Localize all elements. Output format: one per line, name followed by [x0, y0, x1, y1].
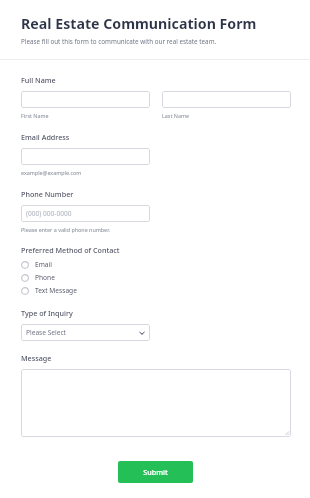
staticText: Please enter a valid phone number.: [21, 226, 110, 233]
staticText: Please Select: [26, 328, 139, 337]
staticText: Email Address: [21, 132, 70, 142]
button[interactable]: Phone: [21, 271, 141, 284]
staticText: Type of Inquiry: [21, 308, 73, 318]
button[interactable]: Text Message: [21, 284, 141, 297]
button[interactable]: Email: [21, 258, 141, 271]
staticText: Please fill out this form to communicate…: [21, 37, 217, 46]
staticText: Phone Number: [21, 189, 74, 199]
button[interactable]: Please Select: [21, 324, 150, 341]
staticText: Text Message: [35, 286, 77, 295]
staticText: Email: [35, 260, 52, 269]
staticText: (000) 000-0000: [26, 209, 72, 218]
staticText: Message: [21, 353, 52, 363]
staticText: Last Name: [162, 112, 189, 119]
staticText: Submit: [143, 467, 168, 477]
staticText: First Name: [21, 112, 49, 119]
button[interactable]: [162, 91, 291, 108]
button[interactable]: (000) 000-0000: [21, 205, 150, 222]
staticText: Preferred Method of Contact: [21, 245, 120, 255]
button[interactable]: [21, 369, 291, 437]
staticText: Real Estate Communication Form: [21, 14, 257, 33]
button[interactable]: [21, 148, 150, 165]
button[interactable]: [21, 91, 150, 108]
button[interactable]: Submit: [118, 461, 193, 483]
staticText: Full Name: [21, 75, 56, 85]
staticText: Phone: [35, 273, 55, 282]
staticText: example@example.com: [21, 169, 82, 176]
